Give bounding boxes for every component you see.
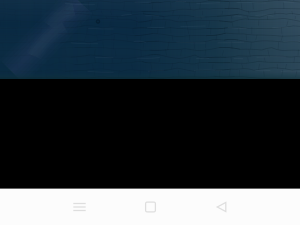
button[interactable]: Home xyxy=(115,189,186,225)
button[interactable]: Recent apps xyxy=(44,189,115,225)
